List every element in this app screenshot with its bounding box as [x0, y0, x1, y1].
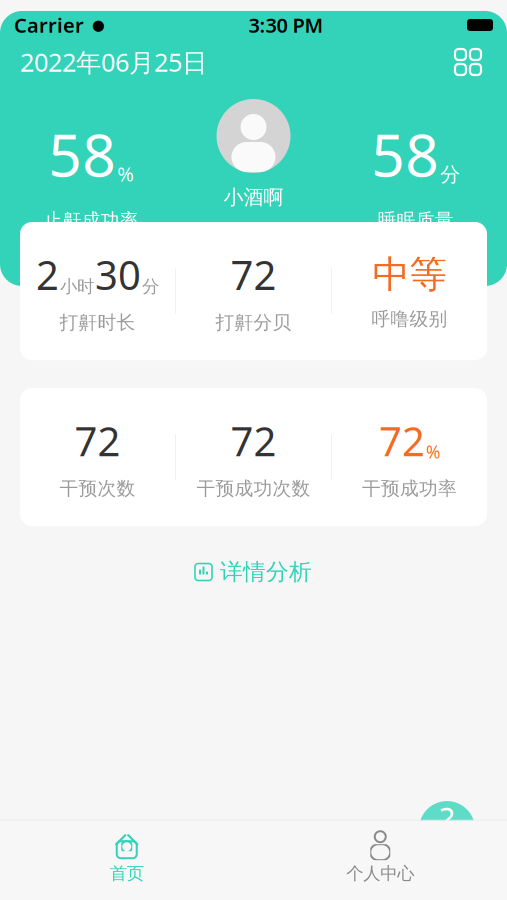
staticText: 72	[230, 248, 276, 301]
staticText: 睡眠质量	[378, 209, 454, 232]
staticText: 个人中心	[346, 863, 414, 884]
staticText: ?	[440, 798, 454, 840]
staticText: Carrier	[14, 12, 84, 38]
staticText: 分	[440, 162, 460, 187]
staticText: 中等	[372, 252, 446, 297]
staticText: 3:30 PM	[248, 12, 323, 38]
staticText: 首页	[110, 863, 144, 884]
staticText: 详情分析	[220, 558, 312, 586]
staticText: ●	[92, 17, 105, 33]
staticText: 2022年06月25日	[20, 45, 207, 79]
staticText: 干预次数	[59, 477, 135, 500]
staticText: 小时	[60, 276, 94, 297]
staticText: 30	[95, 248, 141, 301]
staticText: 2	[36, 248, 59, 301]
staticText: 72	[230, 414, 276, 467]
staticText: 小酒啊	[223, 185, 283, 210]
button[interactable]: 详情分析	[179, 548, 328, 596]
button[interactable]: 个人中心	[253, 827, 507, 890]
button[interactable]: 首页	[0, 827, 253, 890]
button[interactable]: 更多功能	[449, 43, 487, 81]
staticText: 58	[371, 115, 439, 193]
staticText: %	[426, 440, 440, 463]
staticText: 止鼾成功率	[44, 209, 139, 232]
staticText: 72	[74, 414, 120, 467]
staticText: 打鼾分贝	[215, 311, 291, 334]
staticText: 58	[48, 115, 116, 193]
staticText: 打鼾时长	[59, 311, 135, 334]
staticText: 分	[142, 276, 159, 297]
staticText: 干预成功率	[362, 477, 457, 500]
button[interactable]: 帮助	[419, 801, 475, 857]
staticText: 干预成功次数	[196, 477, 310, 500]
staticText: %	[117, 160, 134, 187]
staticText: 72	[379, 414, 425, 467]
staticText: 呼噜级别	[371, 307, 447, 330]
